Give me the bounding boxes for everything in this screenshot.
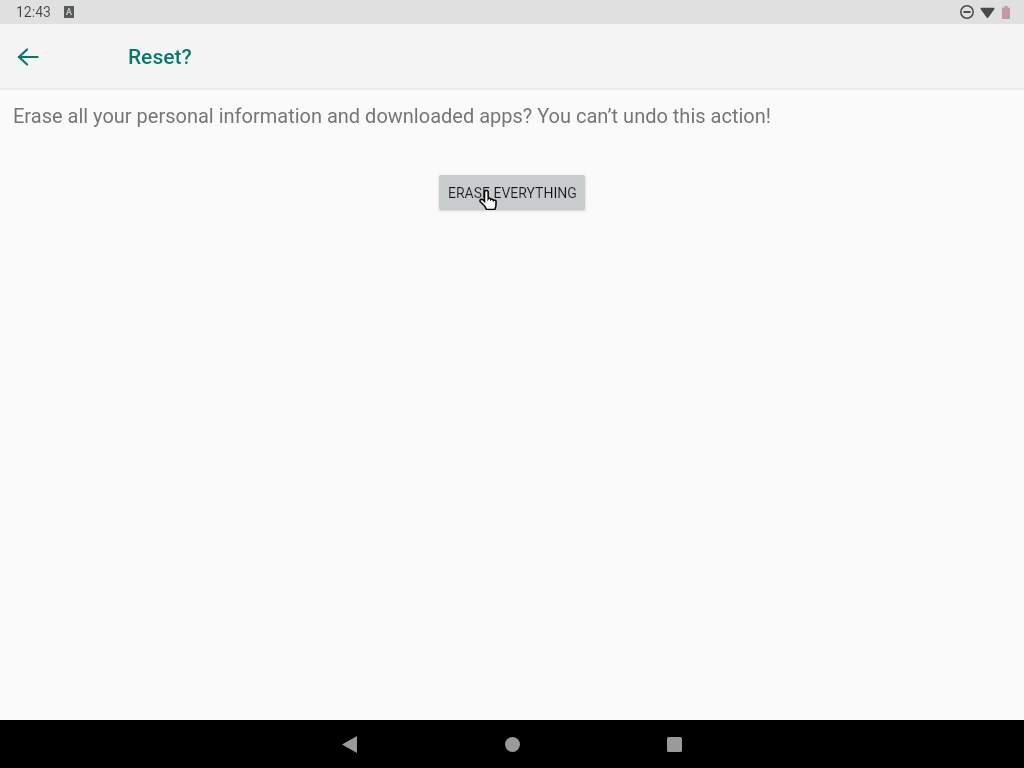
- staticText: Erase all your personal information and …: [13, 104, 771, 127]
- button[interactable]: ERASE EVERYTHING: [439, 175, 585, 210]
- button[interactable]: Navigate up: [12, 41, 44, 73]
- staticText: ERASE EVERYTHING: [448, 185, 577, 201]
- staticText: A: [66, 7, 72, 18]
- button[interactable]: Home: [488, 720, 536, 768]
- button[interactable]: Recent apps: [650, 720, 698, 768]
- staticText: Reset?: [128, 45, 192, 70]
- button[interactable]: Back: [325, 720, 373, 768]
- staticText: 12:43: [16, 4, 51, 20]
